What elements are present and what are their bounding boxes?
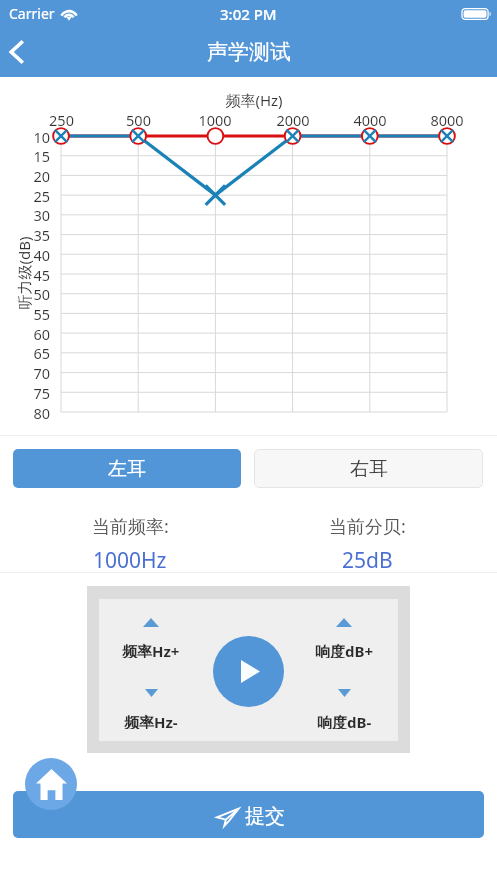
- staticText: 左耳: [108, 457, 146, 481]
- staticText: 10: [33, 127, 50, 146]
- button[interactable]: 响度dB-: [321, 679, 367, 707]
- staticText: 声学测试: [207, 39, 291, 65]
- staticText: 响度dB+: [315, 641, 374, 658]
- button[interactable]: 频率Hz-: [128, 679, 174, 707]
- staticText: 65: [33, 343, 50, 362]
- button[interactable]: 右耳: [254, 449, 483, 488]
- button[interactable]: 左耳: [13, 449, 241, 488]
- staticText: 听力级(dB): [13, 236, 33, 309]
- button[interactable]: 提交: [13, 791, 484, 838]
- staticText: 35: [33, 225, 50, 244]
- staticText: 40: [33, 245, 50, 264]
- staticText: 60: [33, 324, 50, 343]
- staticText: 15: [33, 146, 50, 165]
- staticText: 当前频率:: [92, 514, 169, 539]
- staticText: 55: [33, 304, 50, 323]
- staticText: 8000: [430, 110, 464, 129]
- button[interactable]: 响度dB+: [321, 608, 367, 636]
- staticText: 频率Hz+: [122, 641, 180, 658]
- staticText: Carrier: [9, 4, 55, 23]
- staticText: 频率Hz-: [124, 712, 178, 729]
- staticText: 当前分贝:: [329, 514, 406, 539]
- staticText: 250: [49, 110, 74, 129]
- button[interactable]: Play: [213, 636, 284, 707]
- staticText: 75: [33, 383, 50, 402]
- button[interactable]: Back: [0, 29, 44, 75]
- staticText: 25: [33, 186, 50, 205]
- staticText: 500: [126, 110, 151, 129]
- button[interactable]: 频率Hz+: [128, 608, 174, 636]
- staticText: 70: [33, 363, 50, 382]
- staticText: 响度dB-: [317, 712, 372, 729]
- staticText: 3:02 PM: [220, 4, 277, 24]
- staticText: 1000: [198, 110, 232, 129]
- staticText: 20: [33, 166, 50, 185]
- staticText: 80: [33, 403, 50, 422]
- staticText: 提交: [245, 804, 285, 829]
- staticText: 25dB: [342, 546, 393, 575]
- button[interactable]: Home: [25, 758, 77, 810]
- staticText: 2000: [276, 110, 310, 129]
- staticText: 30: [33, 205, 50, 224]
- staticText: 右耳: [350, 457, 388, 481]
- staticText: 频率(Hz): [225, 90, 283, 110]
- staticText: 4000: [353, 110, 387, 129]
- staticText: 1000Hz: [93, 546, 167, 575]
- staticText: 45: [33, 265, 50, 284]
- staticText: 50: [33, 284, 50, 303]
